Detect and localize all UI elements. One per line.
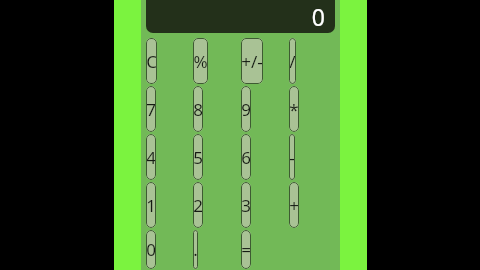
staticText: 6	[241, 146, 251, 169]
button[interactable]: 4	[146, 134, 156, 180]
staticText: .	[193, 238, 198, 261]
button[interactable]: +	[289, 182, 299, 228]
staticText: +	[289, 194, 299, 217]
staticText: 2	[193, 194, 203, 217]
button[interactable]: *	[289, 86, 299, 132]
button[interactable]: 3	[241, 182, 251, 228]
staticText: *	[289, 98, 299, 121]
staticText: =	[241, 238, 251, 261]
staticText: 3	[241, 194, 251, 217]
staticText: 0	[311, 1, 325, 32]
button[interactable]: /	[289, 38, 296, 84]
button[interactable]: C	[146, 38, 157, 84]
staticText: 5	[193, 146, 203, 169]
button[interactable]: 1	[146, 182, 156, 228]
button[interactable]: 2	[193, 182, 203, 228]
staticText: /	[289, 50, 296, 73]
button[interactable]: 9	[241, 86, 251, 132]
button[interactable]: 8	[193, 86, 203, 132]
staticText: 0	[146, 238, 156, 261]
button[interactable]: .	[193, 230, 198, 269]
button[interactable]: 0	[146, 230, 156, 269]
staticText: +/-	[241, 50, 263, 73]
staticText: 7	[146, 98, 156, 121]
button[interactable]: -	[289, 134, 295, 180]
button[interactable]: 6	[241, 134, 251, 180]
staticText: %	[193, 50, 208, 73]
staticText: 9	[241, 98, 251, 121]
button[interactable]: 5	[193, 134, 203, 180]
button[interactable]: 7	[146, 86, 156, 132]
staticText: 4	[146, 146, 156, 169]
button[interactable]: +/-	[241, 38, 263, 84]
button[interactable]: %	[193, 38, 208, 84]
staticText: 1	[146, 194, 156, 217]
button[interactable]: =	[241, 230, 251, 269]
staticText: -	[289, 146, 295, 169]
staticText: 8	[193, 98, 203, 121]
staticText: C	[146, 50, 157, 73]
